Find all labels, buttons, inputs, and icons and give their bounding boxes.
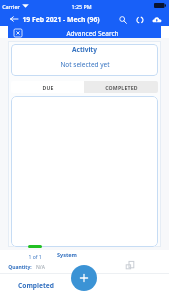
button[interactable]: Close advanced search <box>12 27 23 38</box>
staticText: 1 of 1 <box>28 254 42 261</box>
staticText: Quantity: <box>8 264 32 271</box>
button[interactable]: Close advanced search <box>8 26 161 41</box>
staticText: DUE <box>42 84 54 91</box>
button[interactable]: DUE <box>11 81 84 93</box>
button[interactable]: Download <box>150 13 163 26</box>
staticText: 19 Feb 2021 - Mech (96) <box>22 15 100 24</box>
staticText: COMPLETED <box>105 84 138 91</box>
button[interactable]: Add <box>71 265 97 291</box>
button[interactable]: Back <box>8 13 20 25</box>
staticText: System <box>57 251 77 258</box>
staticText: Completed <box>18 281 54 290</box>
staticText: N/A <box>36 264 45 271</box>
button[interactable]: Search <box>116 13 129 26</box>
button[interactable]: Refresh <box>133 13 146 26</box>
staticText: Activity <box>72 45 97 54</box>
button[interactable]: Copy <box>121 256 139 274</box>
staticText: Not selected yet <box>60 60 110 69</box>
button[interactable]: COMPLETED <box>84 81 158 93</box>
staticText: 1:25 PM <box>71 3 92 10</box>
staticText: Carrier <box>2 3 20 10</box>
staticText: Advanced Search <box>66 29 119 38</box>
